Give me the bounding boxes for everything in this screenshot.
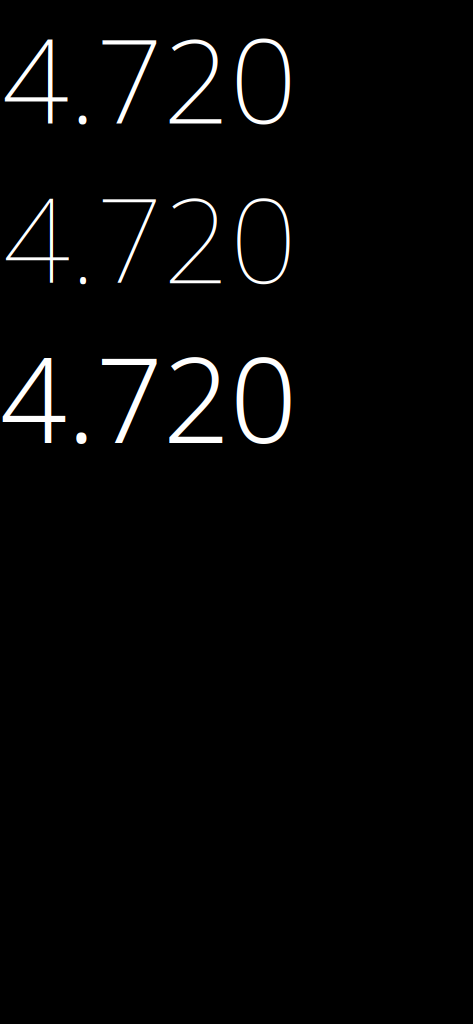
staticText: 4.720: [3, 160, 297, 316]
staticText: 4.720: [0, 320, 297, 475]
staticText: 4.720: [2, 0, 297, 156]
